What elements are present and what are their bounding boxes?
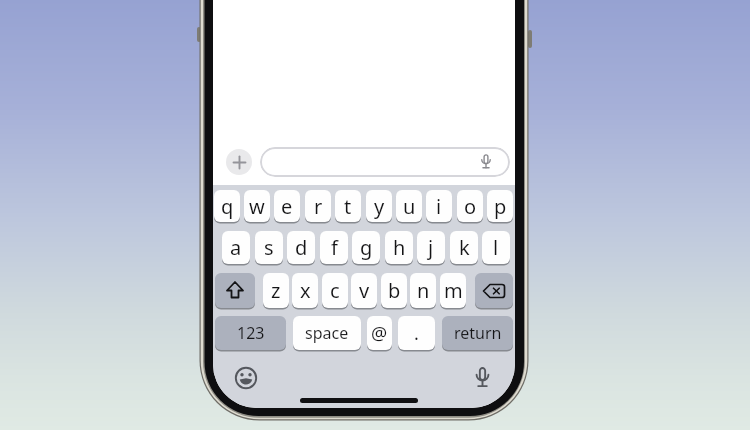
button[interactable]: w: [244, 190, 270, 222]
button[interactable]: y: [366, 190, 392, 222]
staticText: @: [371, 321, 388, 346]
staticText: q: [221, 193, 234, 220]
button[interactable]: s: [255, 231, 283, 264]
button[interactable]: z: [263, 273, 289, 308]
button[interactable]: .: [398, 316, 435, 350]
button[interactable]: a: [222, 231, 250, 264]
button[interactable]: d: [287, 231, 315, 264]
button[interactable]: x: [292, 273, 318, 308]
button[interactable]: u: [396, 190, 422, 222]
button[interactable]: b: [381, 273, 407, 308]
staticText: r: [314, 193, 323, 220]
staticText: m: [444, 277, 463, 304]
button[interactable]: c: [322, 273, 348, 308]
button[interactable]: [215, 273, 255, 308]
staticText: u: [403, 193, 416, 220]
button[interactable]: n: [410, 273, 436, 308]
staticText: d: [295, 234, 308, 261]
staticText: return: [454, 322, 502, 344]
staticText: t: [344, 193, 352, 220]
staticText: a: [230, 234, 242, 261]
staticText: f: [331, 234, 338, 261]
staticText: n: [417, 277, 430, 304]
button[interactable]: l: [482, 231, 510, 264]
button[interactable]: [260, 147, 510, 177]
button[interactable]: k: [450, 231, 478, 264]
button[interactable]: [475, 273, 513, 308]
staticText: p: [494, 193, 507, 220]
button[interactable]: h: [385, 231, 413, 264]
button[interactable]: space: [293, 316, 361, 350]
button[interactable]: [471, 364, 494, 392]
button[interactable]: 123: [215, 316, 286, 350]
staticText: l: [493, 234, 499, 261]
staticText: c: [330, 277, 340, 304]
button[interactable]: o: [457, 190, 483, 222]
button[interactable]: return: [442, 316, 513, 350]
button[interactable]: r: [305, 190, 331, 222]
button[interactable]: p: [487, 190, 513, 222]
button[interactable]: v: [351, 273, 377, 308]
staticText: e: [281, 193, 293, 220]
button[interactable]: t: [335, 190, 361, 222]
staticText: k: [459, 234, 470, 261]
staticText: .: [414, 321, 419, 346]
staticText: b: [388, 277, 401, 304]
staticText: 123: [237, 322, 265, 344]
staticText: space: [305, 322, 349, 344]
staticText: w: [249, 193, 265, 220]
button[interactable]: i: [426, 190, 452, 222]
button[interactable]: g: [352, 231, 380, 264]
staticText: i: [436, 193, 442, 220]
button[interactable]: q: [214, 190, 240, 222]
button[interactable]: [226, 149, 252, 175]
staticText: s: [264, 234, 274, 261]
staticText: v: [359, 277, 370, 304]
staticText: z: [271, 277, 281, 304]
button[interactable]: m: [440, 273, 466, 308]
staticText: x: [300, 277, 311, 304]
button[interactable]: j: [417, 231, 445, 264]
staticText: g: [360, 234, 373, 261]
button[interactable]: [235, 367, 257, 389]
button[interactable]: @: [367, 316, 392, 350]
staticText: j: [428, 234, 434, 261]
button[interactable]: f: [320, 231, 348, 264]
button[interactable]: e: [274, 190, 300, 222]
staticText: o: [464, 193, 477, 220]
staticText: h: [393, 234, 406, 261]
staticText: y: [374, 193, 385, 220]
